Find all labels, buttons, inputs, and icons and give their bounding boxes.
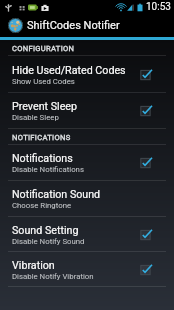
button[interactable]: Toggle bbox=[139, 228, 153, 242]
staticText: ShiftCodes Notifier bbox=[27, 19, 120, 32]
staticText: CONFIGURATION bbox=[12, 44, 75, 53]
button[interactable]: Toggle bbox=[139, 104, 153, 118]
staticText: Vibration bbox=[12, 259, 55, 272]
button[interactable]: Sound Setting bbox=[0, 217, 174, 252]
staticText: Show Used Codes bbox=[12, 77, 75, 86]
button[interactable]: Notification Sound bbox=[0, 181, 174, 217]
staticText: Disable Notify Sound bbox=[12, 237, 85, 246]
staticText: Disable Notify Vibration bbox=[12, 272, 94, 281]
staticText: Notification Sound bbox=[12, 188, 101, 201]
staticText: Hide Used/Rated Codes bbox=[12, 64, 126, 77]
staticText: Prevent Sleep bbox=[12, 100, 77, 113]
staticText: Choose Ringtone bbox=[12, 201, 72, 210]
button[interactable]: Toggle bbox=[139, 263, 153, 277]
staticText: Notifications bbox=[12, 152, 73, 165]
button[interactable]: Prevent Sleep bbox=[0, 93, 174, 129]
button[interactable]: Toggle bbox=[139, 156, 153, 170]
button[interactable]: Toggle bbox=[139, 68, 153, 82]
staticText: 10:53 bbox=[146, 1, 171, 13]
button[interactable]: ShiftCodes Notifier bbox=[0, 14, 174, 37]
staticText: Disable Sleep bbox=[12, 113, 59, 122]
button[interactable]: Vibration bbox=[0, 252, 174, 287]
staticText: Sound Setting bbox=[12, 224, 79, 237]
staticText: NOTIFICATIONS bbox=[12, 133, 71, 142]
button[interactable]: Notifications bbox=[0, 145, 174, 181]
staticText: Disable Notifications bbox=[12, 165, 84, 174]
button[interactable]: Hide Used/Rated Codes bbox=[0, 56, 174, 93]
